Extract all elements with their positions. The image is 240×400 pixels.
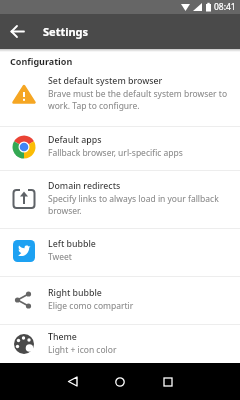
button[interactable] — [48, 363, 96, 400]
button[interactable]: Right bubble — [0, 277, 240, 325]
staticText: Configuration — [10, 55, 73, 67]
staticText: Elige como compartir — [48, 300, 134, 312]
staticText: Theme — [48, 331, 77, 343]
staticText: browser. — [48, 205, 82, 217]
staticText: work. Tap to configure. — [48, 100, 140, 112]
button[interactable]: Set default system browser — [0, 72, 240, 127]
staticText: Default apps — [48, 134, 102, 146]
button[interactable]: Left bubble — [0, 229, 240, 277]
button[interactable]: Domain redirects — [0, 171, 240, 229]
staticText: 08:41 — [214, 1, 236, 13]
button[interactable] — [144, 363, 192, 400]
staticText: Light + icon color — [48, 344, 117, 356]
staticText: Brave must be the default system browser… — [48, 88, 228, 100]
button[interactable]: Theme — [0, 325, 240, 363]
button[interactable] — [96, 363, 144, 400]
staticText: Settings — [43, 24, 89, 39]
button[interactable] — [0, 14, 35, 49]
staticText: Set default system browser — [48, 75, 163, 87]
staticText: Right bubble — [48, 287, 102, 299]
staticText: Tweet — [48, 251, 72, 263]
staticText: Left bubble — [48, 238, 96, 250]
staticText: Domain redirects — [48, 180, 121, 192]
staticText: Fallback browser, url-specific apps — [48, 147, 183, 159]
staticText: Specify links to always load in your fal… — [48, 193, 219, 205]
button[interactable]: Default apps — [0, 127, 240, 171]
